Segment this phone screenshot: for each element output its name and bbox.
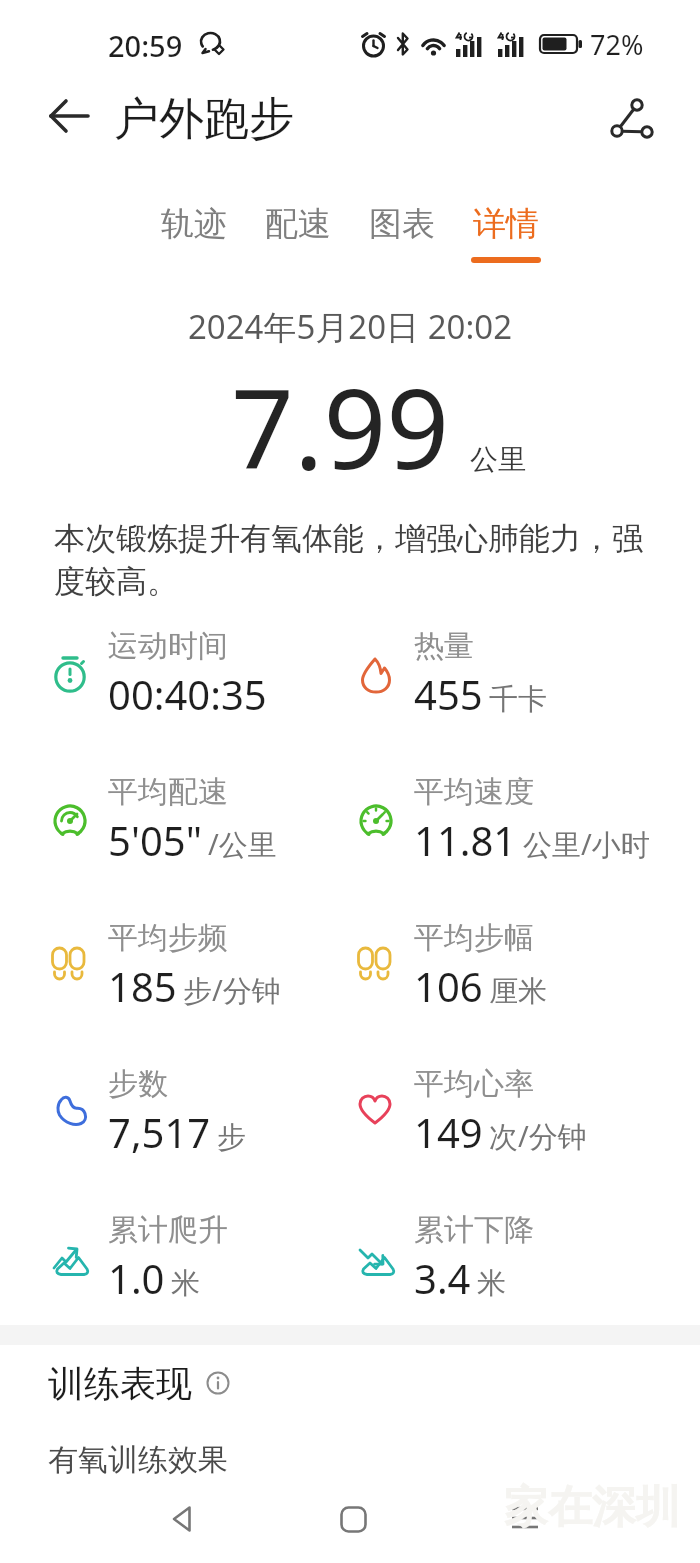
staticText: 公里/小时	[523, 824, 650, 864]
button[interactable]: 热量	[356, 624, 547, 724]
staticText: 步	[217, 1119, 246, 1156]
staticText: 次/分钟	[489, 1116, 587, 1156]
button[interactable]: 平均速度	[356, 770, 650, 870]
staticText: 平均步幅	[414, 919, 534, 957]
staticText: 累计下降	[414, 1211, 534, 1249]
staticText: 平均配速	[108, 773, 228, 811]
staticText: 00:40:35	[108, 667, 267, 721]
staticText: 米	[477, 1265, 506, 1302]
button[interactable]: 轨迹	[159, 203, 229, 263]
staticText: 户外跑步	[114, 91, 294, 148]
staticText: 455	[414, 667, 483, 721]
staticText: 运动时间	[108, 627, 228, 665]
staticText: 3.4	[414, 1251, 471, 1305]
button[interactable]	[510, 1504, 540, 1534]
button[interactable]: 图表	[367, 203, 437, 263]
staticText: 5'05"	[108, 813, 202, 867]
button[interactable]	[47, 97, 92, 142]
staticText: 7,517	[108, 1105, 211, 1159]
staticText: 配速	[265, 203, 331, 245]
staticText: 149	[414, 1105, 483, 1159]
button[interactable]: 累计爬升	[50, 1208, 228, 1308]
staticText: 训练表现	[48, 1361, 192, 1405]
staticText: 20:59	[108, 26, 183, 62]
button[interactable]: 配速	[263, 203, 333, 263]
button[interactable]: 详情	[471, 203, 541, 263]
button[interactable]	[340, 1506, 367, 1533]
staticText: 轨迹	[161, 203, 227, 245]
staticText: 11.81	[414, 813, 517, 867]
staticText: 本次锻炼提升有氧体能，增强心肺能力，强度较高。	[54, 519, 646, 601]
staticText: 平均步频	[108, 919, 228, 957]
staticText: 家在深圳	[504, 1480, 680, 1535]
staticText: 平均心率	[414, 1065, 534, 1103]
staticText: 平均速度	[414, 773, 534, 811]
staticText: 7.99	[231, 351, 450, 501]
staticText: 图表	[369, 203, 435, 245]
staticText: 千卡	[489, 681, 547, 718]
button[interactable]: 运动时间	[50, 624, 267, 724]
staticText: 米	[171, 1265, 200, 1302]
staticText: 有氧训练效果	[48, 1441, 228, 1479]
button[interactable]: 步数	[50, 1062, 246, 1162]
button[interactable]: 平均步幅	[356, 916, 547, 1016]
staticText: 热量	[414, 627, 474, 665]
button[interactable]: 平均心率	[356, 1062, 587, 1162]
staticText: 2024年5月20日 20:02	[0, 304, 700, 349]
staticText: /公里	[208, 824, 277, 864]
staticText: 详情	[473, 203, 539, 245]
staticText: 步/分钟	[183, 970, 281, 1010]
staticText: 累计爬升	[108, 1211, 228, 1249]
staticText: 185	[108, 959, 177, 1013]
staticText: 1.0	[108, 1251, 165, 1305]
button[interactable]	[206, 1371, 230, 1395]
staticText: 106	[414, 959, 483, 1013]
button[interactable]: 累计下降	[356, 1208, 534, 1308]
staticText: 72%	[590, 26, 644, 62]
button[interactable]	[168, 1504, 198, 1534]
staticText: 厘米	[489, 973, 547, 1010]
staticText: 步数	[108, 1065, 168, 1103]
staticText: 公里	[470, 442, 526, 477]
button[interactable]	[604, 95, 652, 143]
button[interactable]: 平均配速	[50, 770, 277, 870]
button[interactable]: 平均步频	[50, 916, 281, 1016]
